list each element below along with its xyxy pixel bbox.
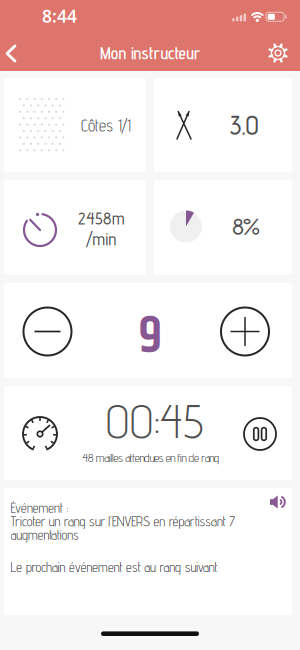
staticText: 00:45	[106, 393, 204, 449]
staticText: Le prochain événement est au rang suivan…	[10, 559, 217, 575]
staticText: Tricoter un rang sur l’ENVERS en réparti…	[10, 513, 235, 529]
staticText: augmentations	[10, 527, 79, 543]
staticText: 48 mailles attendues en fin de rang	[82, 450, 219, 465]
staticText: 9	[138, 298, 162, 377]
staticText: Événement :	[10, 500, 68, 516]
staticText: 3.0	[229, 109, 258, 141]
staticText: 8:44	[42, 4, 77, 27]
staticText: Côtes 1/1	[81, 115, 131, 135]
staticText: 2458m	[78, 208, 124, 228]
button[interactable]: Réglages	[264, 39, 292, 67]
button[interactable]: Pause	[244, 418, 276, 450]
button[interactable]: Retour	[0, 40, 21, 66]
staticText: /min	[85, 228, 116, 249]
staticText: Mon instructeur	[100, 43, 200, 63]
button[interactable]: Diminuer	[23, 307, 71, 355]
staticText: 8%	[232, 212, 260, 240]
button[interactable]: Son	[269, 495, 286, 509]
button[interactable]: Augmenter	[221, 307, 269, 355]
